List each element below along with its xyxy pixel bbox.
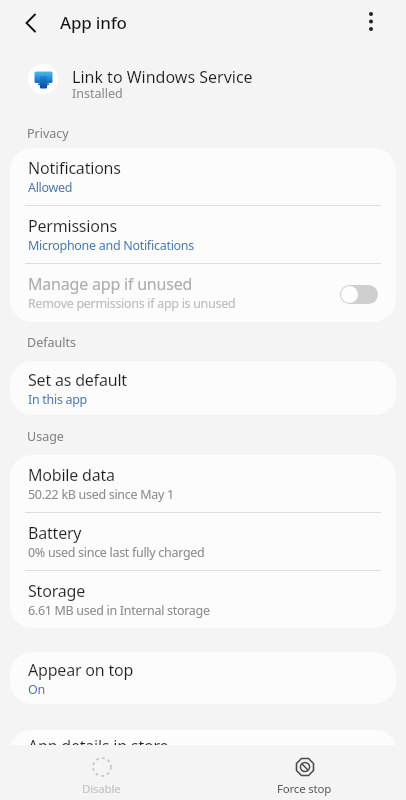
staticText: Remove permissions if app is unused (28, 295, 236, 312)
button[interactable]: Set as default (10, 361, 396, 415)
button[interactable]: Appear on top (10, 652, 396, 704)
staticText: Allowed (28, 179, 73, 196)
staticText: App info (60, 11, 127, 34)
staticText: Mobile data (28, 464, 115, 486)
staticText: On (28, 681, 45, 698)
staticText: Storage (28, 580, 85, 602)
staticText: Installed (72, 85, 123, 102)
staticText: Defaults (27, 334, 76, 351)
staticText: Appear on top (28, 659, 134, 681)
staticText: Usage (27, 428, 64, 445)
button[interactable]: Disable (0, 745, 203, 800)
staticText: Privacy (27, 125, 69, 142)
staticText: 6.61 MB used in Internal storage (28, 602, 210, 619)
button[interactable]: Notifications (10, 148, 396, 205)
staticText: Battery (28, 522, 82, 544)
staticText: Notifications (28, 157, 121, 179)
staticText: Permissions (28, 215, 117, 237)
button[interactable]: Battery (10, 513, 396, 570)
staticText: Manage app if unused (28, 273, 193, 295)
staticText: Microphone and Notifications (28, 237, 194, 254)
button[interactable]: Manage app if unused (10, 264, 396, 321)
button[interactable]: Storage (10, 571, 396, 628)
button[interactable]: Permissions (10, 206, 396, 263)
button[interactable] (24, 13, 38, 33)
button[interactable] (362, 8, 380, 36)
staticText: In this app (28, 391, 88, 408)
button[interactable]: Mobile data (10, 455, 396, 512)
button[interactable]: Force stop (203, 745, 406, 800)
staticText: Link to Windows Service (72, 66, 253, 88)
staticText: 50.22 kB used since May 1 (28, 486, 174, 503)
staticText: 0% used since last fully charged (28, 544, 205, 561)
staticText: Disable (82, 781, 121, 797)
staticText: Force stop (277, 781, 332, 797)
staticText: Set as default (28, 369, 127, 391)
staticText: App details in store (28, 735, 169, 757)
